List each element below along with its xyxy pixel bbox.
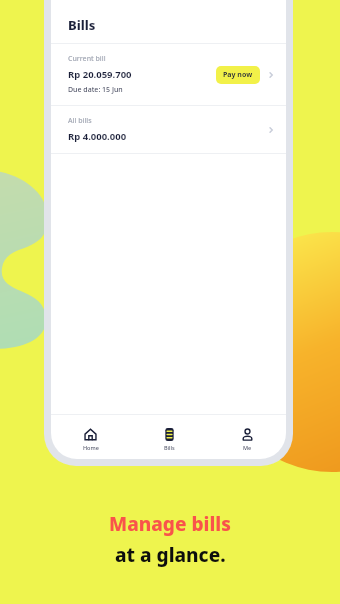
staticText: Me	[243, 444, 252, 451]
staticText: at a glance.	[115, 542, 226, 568]
button[interactable]: Me	[208, 425, 286, 454]
button[interactable]: Bills	[130, 425, 208, 454]
staticText: Due date: 15 Jun	[68, 85, 123, 95]
button[interactable]: Home	[51, 425, 130, 454]
button[interactable]: All bills	[51, 106, 286, 153]
staticText: All bills	[68, 116, 92, 126]
staticText: Pay now	[223, 70, 253, 80]
staticText: Current bill	[68, 54, 106, 64]
staticText: Bills	[68, 16, 96, 34]
button[interactable]: Pay now	[216, 66, 260, 84]
staticText: Rp 20.059.700	[68, 68, 132, 81]
staticText: Bills	[164, 444, 175, 451]
staticText: Rp 4.000.000	[68, 130, 127, 143]
button[interactable]: Current bill	[51, 44, 286, 105]
staticText: Manage bills	[109, 511, 231, 537]
staticText: Home	[83, 444, 99, 451]
